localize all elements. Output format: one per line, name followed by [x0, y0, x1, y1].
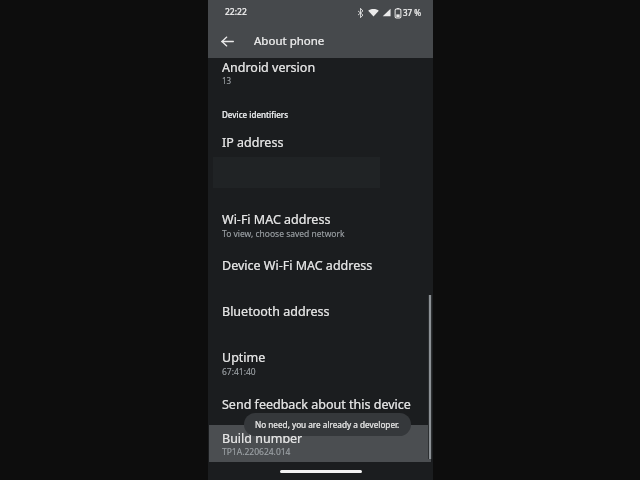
staticText: To view, choose saved network — [222, 228, 345, 240]
button[interactable]: Back — [213, 27, 241, 55]
staticText: Uptime — [222, 349, 266, 366]
staticText: Android version — [222, 59, 316, 76]
staticText: TP1A.220624.014 — [222, 446, 291, 458]
button[interactable]: Build number — [209, 425, 431, 462]
staticText: Send feedback about this device — [222, 396, 411, 413]
staticText: Device Wi-Fi MAC address — [222, 257, 373, 274]
staticText: About phone — [254, 33, 325, 49]
staticText: Device identifiers — [222, 109, 289, 120]
staticText: Build number — [222, 430, 303, 447]
staticText: Bluetooth address — [222, 303, 330, 320]
staticText: Wi-Fi MAC address — [222, 211, 331, 228]
staticText: 22:22 — [225, 6, 247, 18]
staticText: 37 % — [403, 7, 422, 18]
staticText: No need, you are already a developer. — [255, 419, 400, 430]
staticText: 67:41:40 — [222, 366, 256, 378]
staticText: 13 — [222, 75, 232, 86]
staticText: IP address — [222, 134, 284, 151]
